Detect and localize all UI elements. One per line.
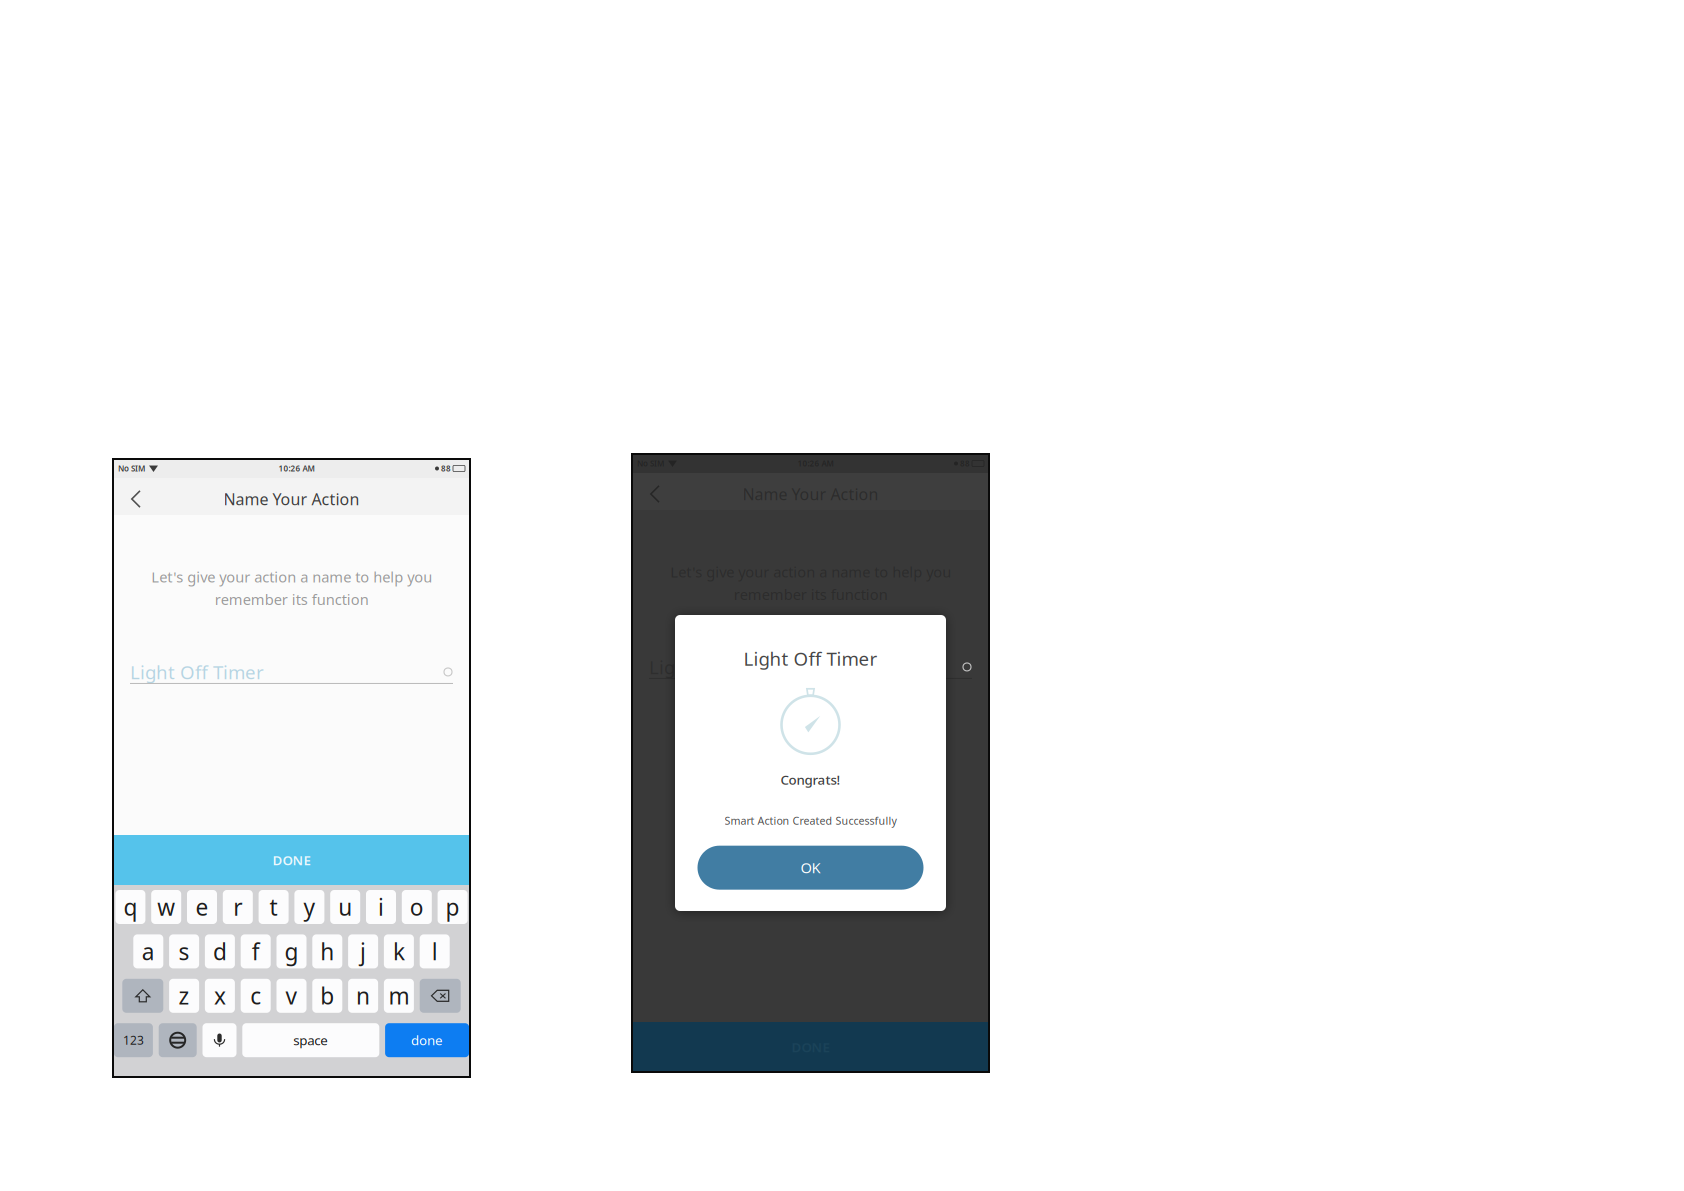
button[interactable]: d: [205, 934, 235, 968]
button[interactable]: g: [276, 934, 306, 968]
button[interactable]: y: [294, 890, 324, 924]
staticText: 88: [960, 458, 970, 469]
staticText: Light Off Timer: [130, 660, 264, 684]
button[interactable]: Light Off Timer: [649, 656, 972, 679]
button[interactable]: w: [151, 890, 181, 924]
staticText: Name Your Action: [742, 483, 878, 505]
button[interactable]: r: [223, 890, 253, 924]
button[interactable]: u: [330, 890, 360, 924]
staticText: n: [356, 981, 370, 1011]
button[interactable]: j: [348, 934, 378, 968]
button[interactable]: n: [348, 979, 378, 1013]
button[interactable]: Next keyboard: [159, 1023, 197, 1057]
button[interactable]: b: [312, 979, 342, 1013]
staticText: Congrats!: [780, 771, 840, 788]
staticText: space: [293, 1031, 328, 1049]
button[interactable]: Back: [640, 475, 670, 512]
staticText: Light Off Timer: [743, 646, 877, 671]
button[interactable]: c: [241, 979, 271, 1013]
button[interactable]: t: [259, 890, 289, 924]
staticText: p: [446, 892, 460, 922]
staticText: OK: [800, 858, 820, 877]
button[interactable]: space: [242, 1023, 379, 1057]
button[interactable]: Delete: [420, 979, 461, 1013]
button[interactable]: l: [420, 934, 450, 968]
staticText: Smart Action Created Successfully: [724, 813, 896, 828]
button[interactable]: done: [385, 1023, 469, 1057]
staticText: h: [320, 936, 334, 966]
staticText: f: [252, 936, 260, 966]
button[interactable]: q: [115, 890, 145, 924]
button[interactable]: p: [438, 890, 468, 924]
button[interactable]: Dictate: [202, 1023, 236, 1057]
button[interactable]: 123: [114, 1023, 153, 1057]
button[interactable]: k: [384, 934, 414, 968]
button[interactable]: Light Off Timer: [130, 661, 453, 684]
staticText: d: [213, 936, 227, 966]
staticText: a: [142, 936, 155, 966]
staticText: k: [393, 936, 405, 966]
button[interactable]: h: [312, 934, 342, 968]
staticText: s: [179, 936, 190, 966]
button[interactable]: i: [366, 890, 396, 924]
staticText: x: [214, 981, 226, 1011]
staticText: r: [233, 892, 242, 922]
staticText: 10:26 AM: [797, 458, 833, 469]
button[interactable]: z: [169, 979, 199, 1013]
staticText: t: [270, 892, 278, 922]
button[interactable]: f: [241, 934, 271, 968]
button[interactable]: a: [133, 934, 163, 968]
staticText: 10:26 AM: [278, 463, 314, 474]
staticText: w: [157, 892, 175, 922]
button[interactable]: s: [169, 934, 199, 968]
staticText: done: [411, 1031, 443, 1049]
staticText: No SIM: [118, 463, 145, 474]
staticText: y: [303, 892, 315, 922]
staticText: u: [338, 892, 352, 922]
staticText: m: [388, 981, 409, 1011]
button[interactable]: v: [276, 979, 306, 1013]
staticText: o: [410, 892, 424, 922]
button[interactable]: DONE: [632, 1022, 989, 1072]
button[interactable]: Shift: [122, 979, 163, 1013]
button[interactable]: x: [205, 979, 235, 1013]
staticText: b: [320, 981, 334, 1011]
button[interactable]: Clear text: [962, 662, 972, 672]
staticText: Let's give your action a name to help yo…: [151, 567, 432, 609]
button[interactable]: Back: [121, 480, 151, 517]
staticText: No SIM: [637, 458, 664, 469]
staticText: v: [285, 981, 297, 1011]
button[interactable]: Clear text: [443, 667, 453, 677]
button[interactable]: e: [187, 890, 217, 924]
staticText: Name Your Action: [223, 488, 359, 510]
button[interactable]: m: [384, 979, 414, 1013]
staticText: i: [378, 892, 384, 922]
staticText: Light Off Timer: [649, 655, 783, 679]
staticText: c: [250, 981, 261, 1011]
staticText: 88: [441, 463, 451, 474]
button[interactable]: o: [402, 890, 432, 924]
staticText: Let's give your action a name to help yo…: [670, 562, 951, 604]
staticText: z: [179, 981, 190, 1011]
staticText: e: [195, 892, 208, 922]
staticText: DONE: [272, 851, 310, 869]
staticText: q: [123, 892, 137, 922]
staticText: DONE: [791, 1038, 829, 1056]
staticText: l: [432, 936, 438, 966]
staticText: g: [284, 936, 298, 966]
staticText: j: [360, 936, 366, 966]
button[interactable]: DONE: [113, 835, 470, 885]
button[interactable]: OK: [697, 846, 923, 890]
staticText: 123: [123, 1032, 144, 1048]
